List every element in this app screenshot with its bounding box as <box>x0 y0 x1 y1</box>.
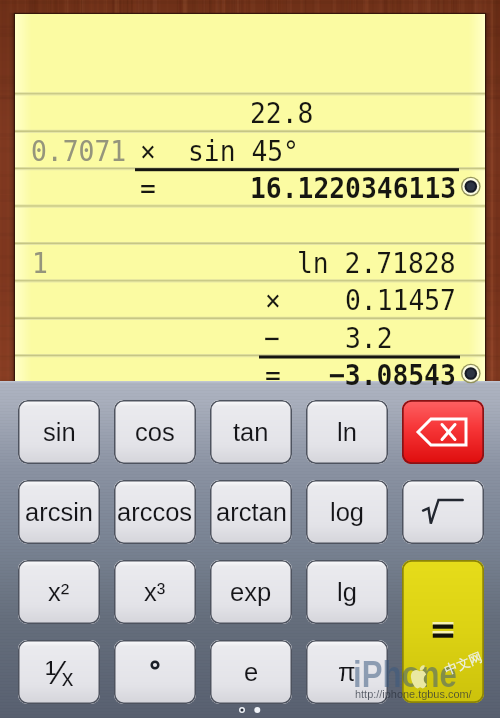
staticText: 3.2 <box>345 321 393 355</box>
staticText: 1 <box>32 246 48 280</box>
staticText: −3.08543 <box>329 358 456 392</box>
button[interactable]: arccos <box>114 480 196 544</box>
button[interactable]: Delete <box>402 400 484 464</box>
staticText: 16.1220346113 <box>250 171 456 205</box>
staticText: http://iphone.tgbus.com/ <box>355 688 472 701</box>
button[interactable]: lg <box>306 560 388 624</box>
staticText: 中文网 <box>442 648 484 678</box>
staticText: ln <box>337 418 357 446</box>
button[interactable]: x² <box>18 560 100 624</box>
button[interactable]: x³ <box>114 560 196 624</box>
staticText: × <box>265 283 281 317</box>
staticText: arcsin <box>25 498 94 526</box>
button[interactable]: exp <box>210 560 292 624</box>
staticText: lg <box>337 578 357 606</box>
button[interactable] <box>402 480 484 544</box>
staticText: x³ <box>144 578 166 606</box>
staticText: ln 2.71828 <box>297 246 456 280</box>
button[interactable]: π <box>306 640 388 704</box>
button[interactable]: tan <box>210 400 292 464</box>
staticText: 0.11457 <box>345 283 457 317</box>
button[interactable]: e <box>210 640 292 704</box>
staticText: iPhone <box>353 654 458 694</box>
button[interactable]: log <box>306 480 388 544</box>
staticText: 0.7071 <box>31 134 126 168</box>
staticText: exp <box>230 578 272 606</box>
button[interactable]: sin <box>18 400 100 464</box>
staticText: × <box>140 134 156 168</box>
staticText: = <box>265 358 281 392</box>
staticText: = <box>140 171 156 205</box>
staticText: arccos <box>117 498 193 526</box>
staticText: ¹⁄ₓ <box>45 653 74 691</box>
staticText: π <box>338 658 356 686</box>
staticText: tan <box>233 418 269 446</box>
staticText: sin 45° <box>188 134 300 168</box>
button[interactable] <box>402 560 484 703</box>
staticText: arctan <box>216 498 287 526</box>
staticText: sin <box>43 418 76 446</box>
button[interactable]: arctan <box>210 480 292 544</box>
staticText: e <box>244 658 259 686</box>
button[interactable]: arcsin <box>18 480 100 544</box>
staticText: log <box>330 498 365 526</box>
staticText: 22.8 <box>250 96 314 130</box>
staticText: cos <box>135 418 175 446</box>
staticText: x² <box>48 578 70 606</box>
staticText: − <box>264 321 280 355</box>
button[interactable]: cos <box>114 400 196 464</box>
button[interactable]: ln <box>306 400 388 464</box>
button[interactable] <box>114 640 196 704</box>
button[interactable]: ¹⁄ₓ <box>18 640 100 704</box>
